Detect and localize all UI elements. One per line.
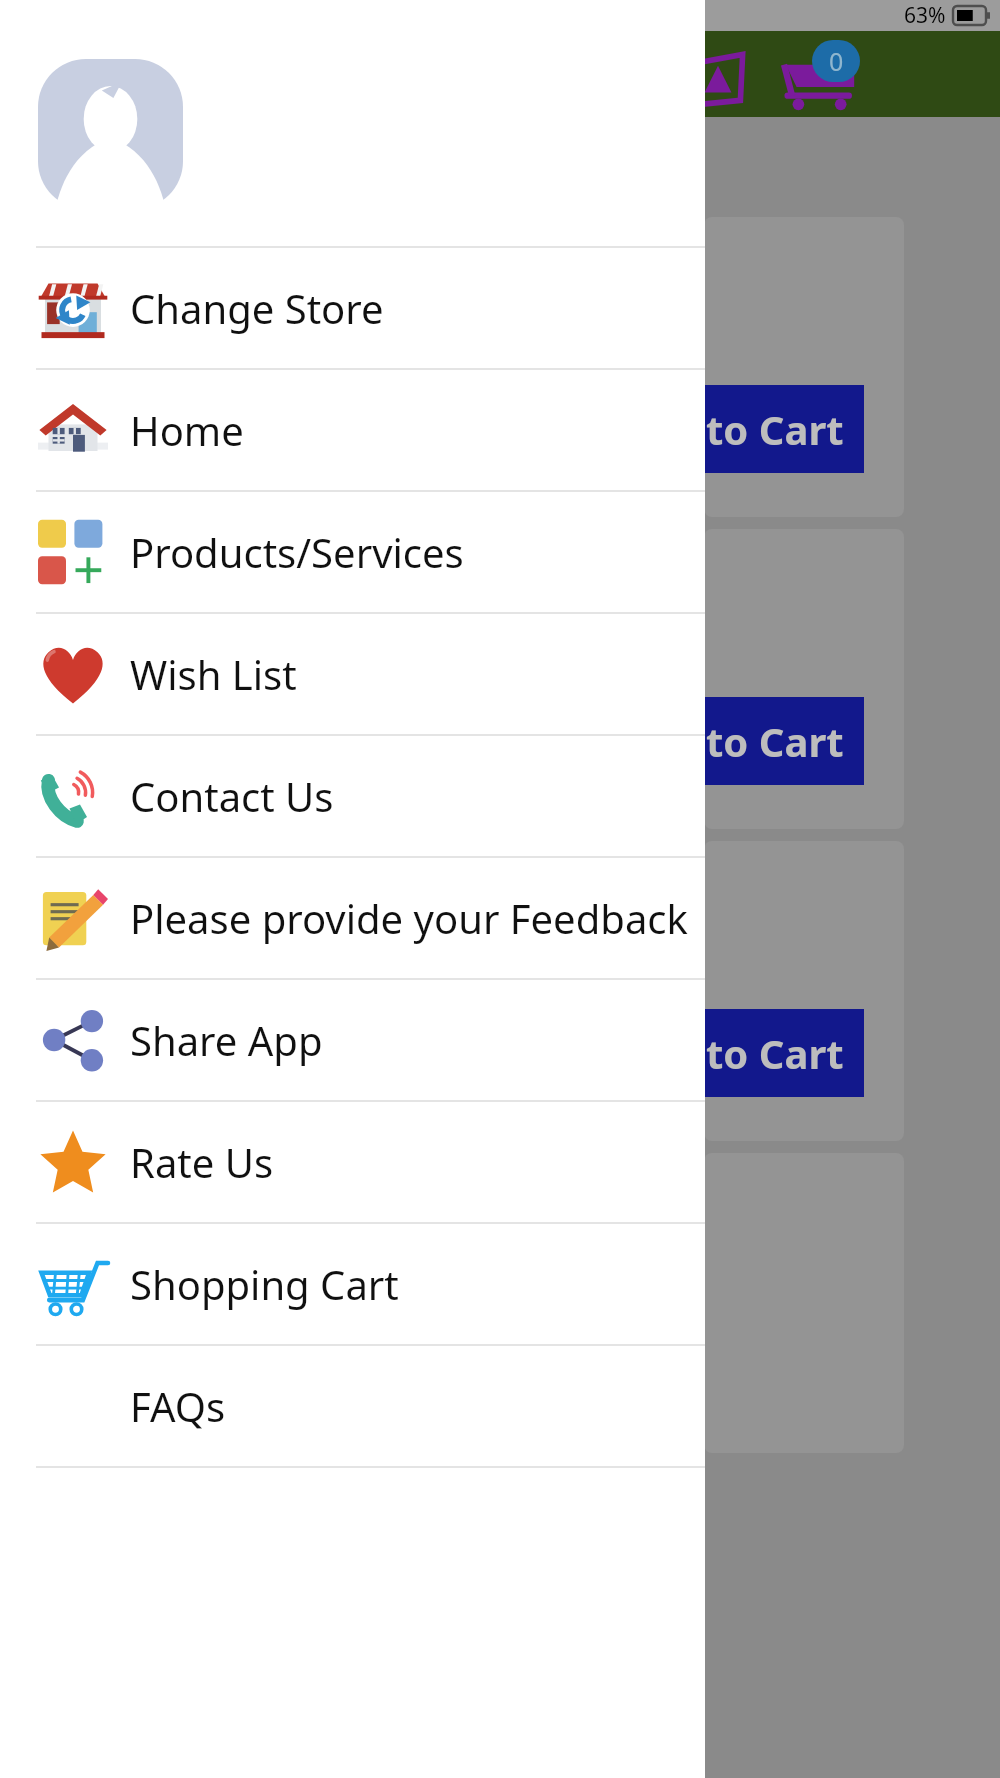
button[interactable]: Rate Us: [0, 1102, 705, 1222]
staticText: Contact Us: [130, 769, 334, 823]
button[interactable]: Share App: [0, 980, 705, 1100]
staticText: to Cart: [706, 402, 844, 456]
staticText: Home: [130, 403, 244, 457]
staticText: FAQs: [130, 1379, 226, 1433]
button[interactable]: Change Store: [0, 248, 705, 368]
staticText: Please provide your Feedback: [130, 891, 688, 945]
button[interactable]: FAQs: [0, 1346, 705, 1466]
button[interactable]: Shopping Cart: [0, 1224, 705, 1344]
staticText: Share App: [130, 1013, 323, 1067]
staticText: Change Store: [130, 281, 384, 335]
button[interactable]: Wish List: [0, 614, 705, 734]
staticText: Products/Services: [130, 525, 464, 579]
button[interactable]: to Cart: [704, 385, 864, 473]
staticText: to Cart: [706, 714, 844, 768]
button[interactable]: to Cart: [704, 697, 864, 785]
button[interactable]: Please provide your Feedback: [0, 858, 705, 978]
staticText: 63%: [904, 1, 946, 30]
staticText: Shopping Cart: [130, 1257, 399, 1311]
button[interactable]: Cart: [775, 51, 865, 113]
button[interactable]: Products/Services: [0, 492, 705, 612]
button[interactable]: to Cart: [704, 1009, 864, 1097]
staticText: to Cart: [706, 1026, 844, 1080]
button[interactable]: Home: [0, 370, 705, 490]
staticText: Rate Us: [130, 1135, 274, 1189]
staticText: 0: [829, 44, 844, 78]
staticText: Wish List: [130, 647, 297, 701]
button[interactable]: Contact Us: [0, 736, 705, 856]
